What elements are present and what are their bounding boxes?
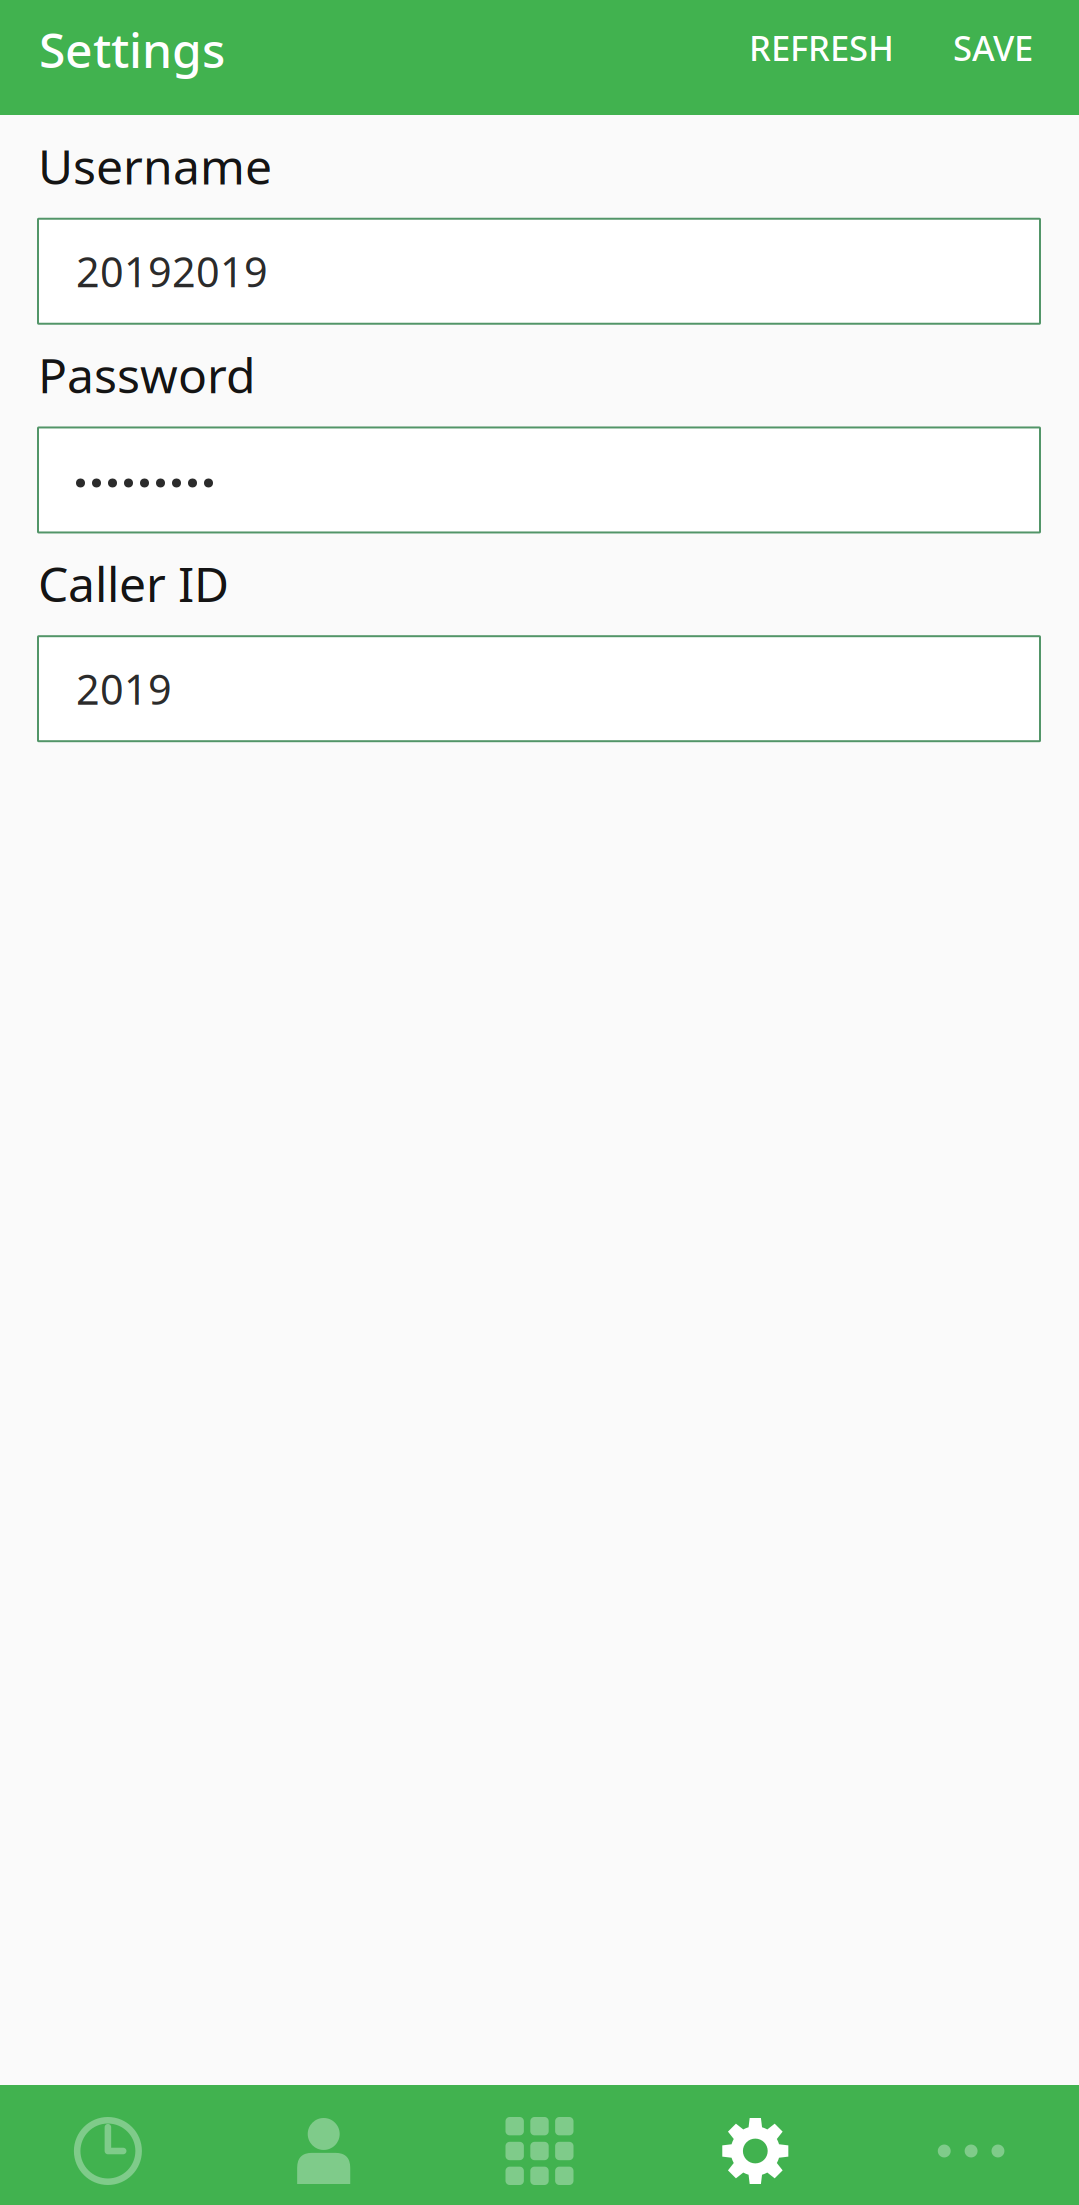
button[interactable]: Username (38, 219, 1040, 324)
button[interactable]: Recents (0, 2085, 216, 2205)
button[interactable]: Contacts (216, 2085, 432, 2205)
button[interactable]: Settings (647, 2085, 863, 2205)
staticText: Password (38, 343, 256, 406)
staticText: REFRESH (749, 24, 894, 70)
staticText: Caller ID (38, 551, 229, 615)
button[interactable]: Password (38, 427, 1040, 532)
staticText: Username (38, 134, 272, 198)
button[interactable]: Caller ID (38, 636, 1040, 741)
staticText: 20192019 (76, 244, 268, 299)
staticText: SAVE (953, 24, 1033, 70)
button[interactable]: More (863, 2085, 1079, 2205)
button[interactable]: REFRESH (741, 14, 902, 92)
staticText: Settings (39, 18, 225, 81)
button[interactable]: SAVE (945, 14, 1041, 92)
button[interactable]: Keypad (432, 2085, 647, 2205)
staticText: 2019 (76, 661, 172, 716)
